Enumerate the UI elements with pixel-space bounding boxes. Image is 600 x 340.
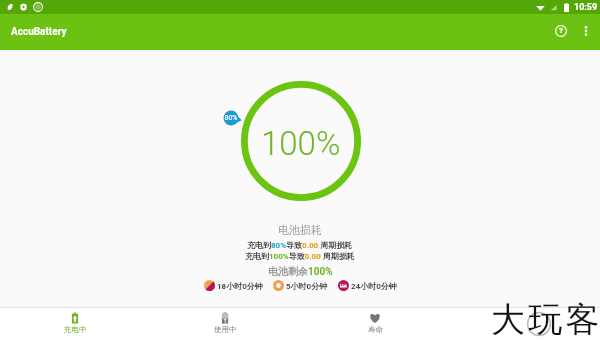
button[interactable]: 5小时0分钟 bbox=[273, 280, 328, 291]
button[interactable]: 24小时0分钟 bbox=[338, 280, 397, 291]
staticText: 电池剩余100% bbox=[268, 265, 333, 278]
staticText: 24小时0分钟 bbox=[351, 281, 397, 291]
button[interactable]: Health bbox=[300, 308, 450, 340]
other: Health bbox=[368, 311, 382, 325]
staticText: AccuBattery bbox=[11, 26, 67, 38]
staticText: 10:59 bbox=[574, 2, 598, 13]
button[interactable]: More options bbox=[571, 16, 600, 45]
staticText: 5小时0分钟 bbox=[286, 281, 328, 291]
button[interactable]: Help bbox=[546, 16, 575, 45]
staticText: 充电到100%导致0.00 周期损耗 bbox=[245, 251, 355, 261]
staticText: 充电中 bbox=[64, 325, 87, 334]
staticText: 18小时0分钟 bbox=[217, 281, 263, 291]
button[interactable]: 18小时0分钟 bbox=[204, 280, 263, 291]
staticText: 充电到80%导致0.00 周期损耗 bbox=[247, 240, 353, 250]
button[interactable]: Discharging bbox=[150, 308, 300, 340]
staticText: 使用中 bbox=[214, 325, 237, 334]
other: Discharging bbox=[218, 311, 232, 325]
staticText: 大玩客 bbox=[491, 298, 600, 340]
staticText: 电池损耗 bbox=[278, 223, 322, 237]
staticText: ? bbox=[559, 26, 563, 35]
staticText: 80% bbox=[223, 114, 239, 122]
staticText: 寿命 bbox=[368, 325, 383, 334]
staticText: 100% bbox=[261, 124, 341, 163]
button[interactable]: Charging bbox=[0, 308, 150, 340]
other: Charging bbox=[68, 311, 82, 325]
